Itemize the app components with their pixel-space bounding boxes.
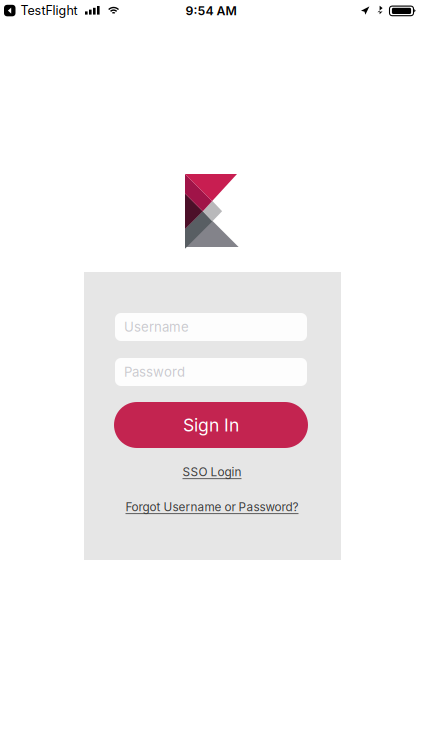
staticText: SSO Login: [182, 465, 241, 479]
button[interactable]: SSO Login: [152, 461, 272, 483]
button[interactable]: Username: [115, 313, 307, 341]
staticText: TestFlight: [20, 3, 77, 18]
staticText: Password: [124, 364, 185, 380]
button[interactable]: Sign In: [114, 402, 308, 448]
staticText: 9:54 AM: [185, 3, 236, 18]
button[interactable]: Password: [115, 358, 307, 386]
staticText: Sign In: [183, 414, 239, 436]
staticText: Forgot Username or Password?: [125, 500, 298, 514]
button[interactable]: Forgot Username or Password?: [112, 496, 312, 518]
staticText: Username: [124, 319, 189, 335]
